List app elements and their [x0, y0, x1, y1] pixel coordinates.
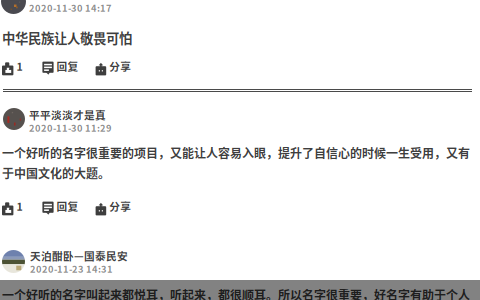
- staticText: 天泊酣卧—国泰民安: [30, 248, 128, 263]
- staticText: 分享: [109, 198, 131, 214]
- button[interactable]: 分享: [96, 59, 131, 73]
- button[interactable]: Author avatar: [2, 250, 25, 273]
- staticText: 一个好听的名字叫起来都悦耳，听起来，都很顺耳。所以名字很重要，好名字有助于个人发: [2, 286, 470, 300]
- staticText: 2020-11-30 11:29: [29, 121, 112, 134]
- button[interactable]: 分享: [96, 199, 131, 213]
- staticText: 中华民族让人敬畏可怕: [2, 28, 132, 47]
- staticText: 分享: [109, 58, 131, 74]
- staticText: 1: [16, 58, 22, 74]
- button[interactable]: 1: [2, 199, 22, 213]
- staticText: 回复: [57, 58, 79, 74]
- button[interactable]: Author avatar: [3, 108, 25, 130]
- button[interactable]: Author avatar: [1, 0, 26, 14]
- staticText: 2020-11-30 14:17: [29, 1, 112, 14]
- staticText: 平平淡淡才是真: [29, 107, 106, 122]
- staticText: 1: [16, 198, 22, 214]
- button[interactable]: 回复: [42, 199, 79, 213]
- staticText: 2020-11-23 14:31: [30, 262, 113, 275]
- button[interactable]: 回复: [42, 59, 79, 73]
- staticText: 一个好听的名字很重要的项目，又能让人容易入眼，提升了自信心的时候一生受用，又有于…: [2, 144, 470, 182]
- button[interactable]: 1: [2, 59, 22, 73]
- staticText: 回复: [57, 198, 79, 214]
